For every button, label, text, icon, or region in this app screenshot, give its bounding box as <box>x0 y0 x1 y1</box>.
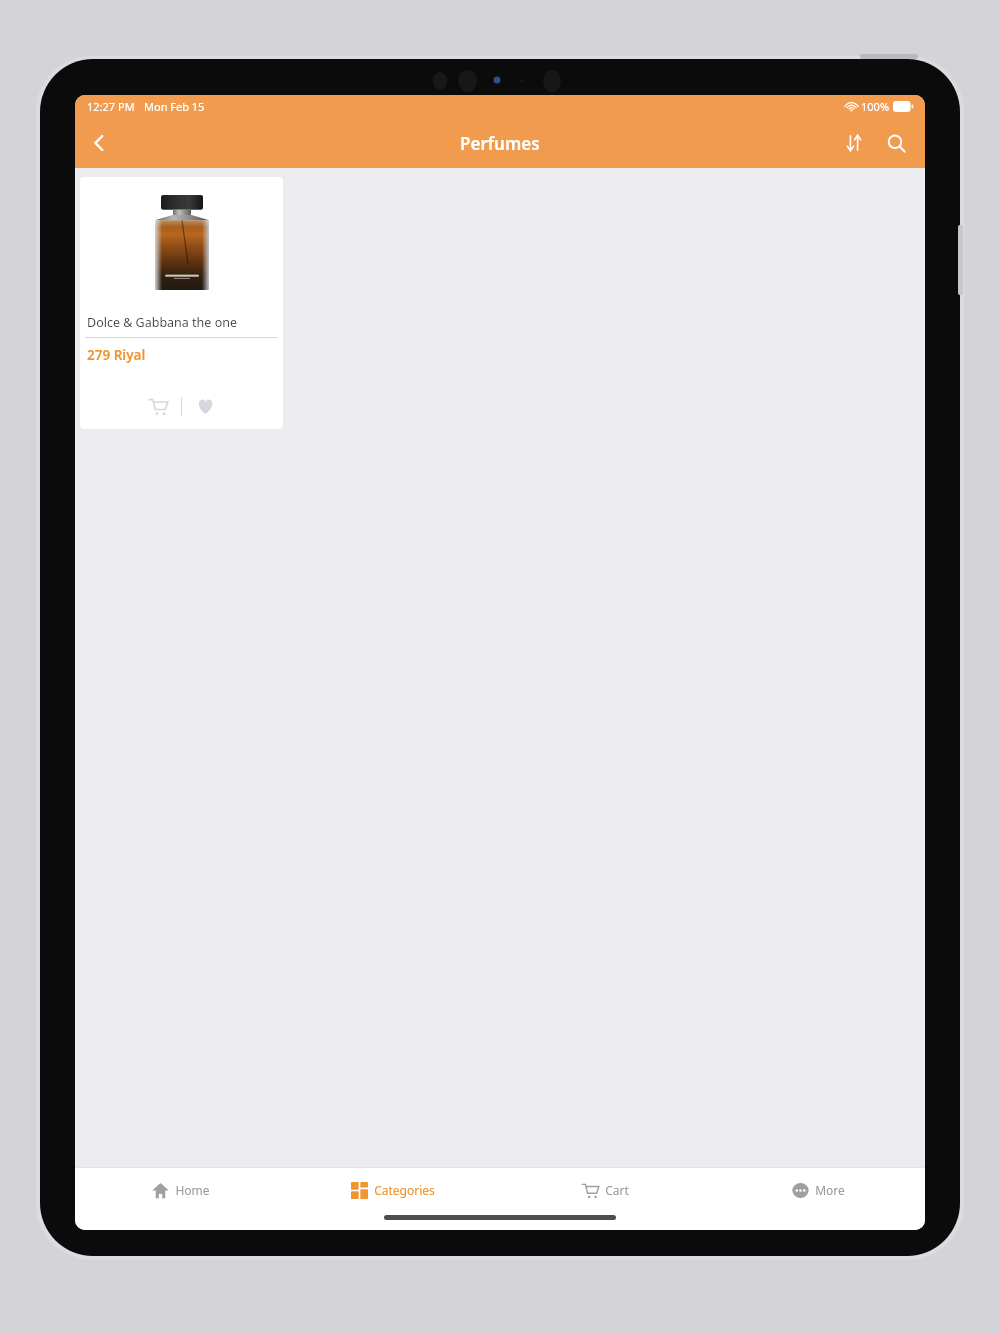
button[interactable]: Search <box>877 124 915 162</box>
staticText: Cart <box>605 1182 629 1198</box>
staticText: Mon Feb 15 <box>144 99 205 114</box>
staticText: Perfumes <box>460 132 540 155</box>
staticText: More <box>815 1182 845 1198</box>
button[interactable]: Dolce & Gabbana the one <box>80 177 283 429</box>
staticText: 12:27 PM <box>87 99 135 114</box>
button[interactable]: More <box>712 1168 925 1212</box>
button[interactable]: Categories <box>287 1168 499 1212</box>
staticText: 279 Riyal <box>87 346 146 364</box>
staticText: Categories <box>374 1182 435 1198</box>
button[interactable]: Add to favourites <box>182 386 228 426</box>
button[interactable]: Add to cart <box>135 386 181 426</box>
button[interactable]: Back <box>79 123 119 163</box>
staticText: Home <box>175 1182 210 1198</box>
button[interactable]: Home <box>75 1168 287 1212</box>
staticText: Dolce & Gabbana the one <box>87 314 237 331</box>
staticText: 100% <box>861 99 890 114</box>
button[interactable]: Cart <box>499 1168 712 1212</box>
button[interactable]: Sort <box>835 124 873 162</box>
